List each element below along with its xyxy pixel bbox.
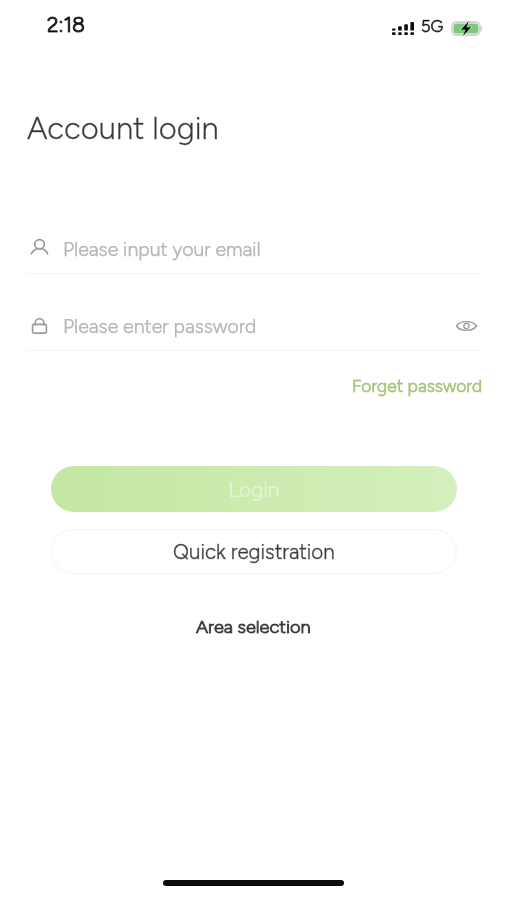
staticText: Please input your email (63, 237, 261, 260)
button[interactable]: Forget password (344, 370, 491, 401)
button[interactable]: Area selection (186, 611, 321, 643)
staticText: Login (228, 477, 280, 502)
staticText: 5G (421, 16, 444, 36)
staticText: Quick registration (173, 539, 335, 564)
staticText: 5G (421, 16, 444, 36)
button[interactable]: Show password (450, 310, 482, 342)
button[interactable]: Quick registration (51, 529, 457, 574)
staticText: 2:18 (47, 12, 86, 37)
staticText: 2:18 (47, 12, 86, 37)
staticText: Area selection (196, 616, 311, 638)
staticText: Forget password (352, 375, 483, 396)
button[interactable]: Login (51, 466, 457, 512)
staticText: Account login (27, 110, 219, 147)
staticText: Forget password (352, 375, 483, 396)
staticText: Quick registration (173, 539, 335, 564)
staticText: Please input your email (63, 237, 261, 260)
staticText: Account login (27, 110, 219, 147)
staticText: Please enter password (63, 314, 257, 337)
staticText: Please enter password (63, 314, 257, 337)
staticText: Area selection (196, 616, 311, 638)
